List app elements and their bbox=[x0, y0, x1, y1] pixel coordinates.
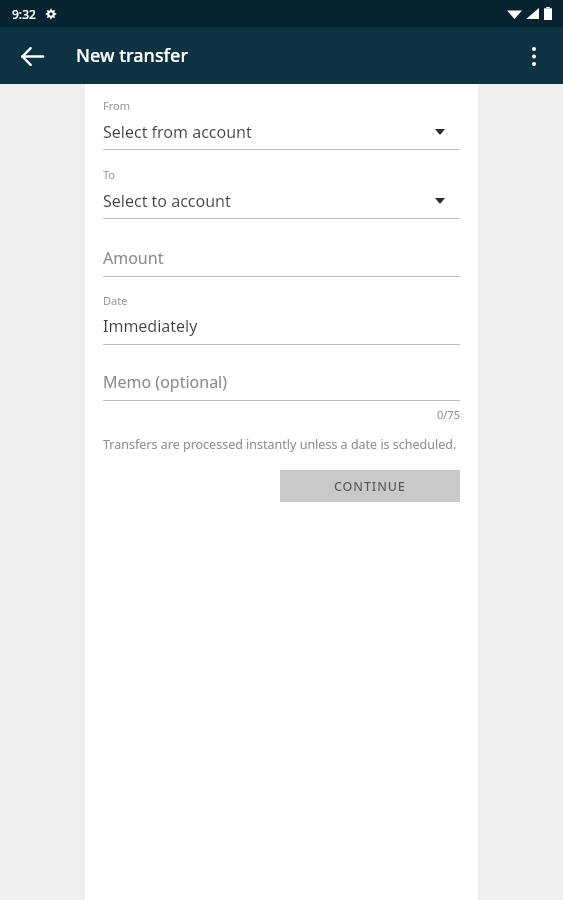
staticText: Memo (optional) bbox=[103, 371, 228, 393]
button[interactable]: Navigate up bbox=[8, 32, 56, 80]
staticText: From bbox=[103, 98, 130, 113]
staticText: CONTINUE bbox=[334, 478, 406, 495]
button[interactable]: Memo (optional) bbox=[103, 371, 460, 401]
button[interactable]: To bbox=[103, 167, 460, 219]
button[interactable]: From bbox=[103, 98, 460, 150]
staticText: To bbox=[103, 167, 116, 182]
staticText: Immediately bbox=[103, 315, 198, 337]
button[interactable]: Date bbox=[103, 293, 460, 345]
staticText: 9:32 bbox=[12, 6, 36, 22]
button[interactable]: CONTINUE bbox=[280, 470, 460, 502]
button[interactable]: Amount bbox=[103, 247, 460, 277]
staticText: Transfers are processed instantly unless… bbox=[103, 436, 457, 453]
staticText: New transfer bbox=[76, 43, 188, 68]
staticText: Date bbox=[103, 293, 128, 308]
staticText: Select to account bbox=[103, 190, 231, 212]
staticText: 0/75 bbox=[103, 407, 460, 422]
button[interactable]: More options bbox=[512, 34, 556, 78]
staticText: Select from account bbox=[103, 121, 252, 143]
staticText: Amount bbox=[103, 247, 164, 269]
